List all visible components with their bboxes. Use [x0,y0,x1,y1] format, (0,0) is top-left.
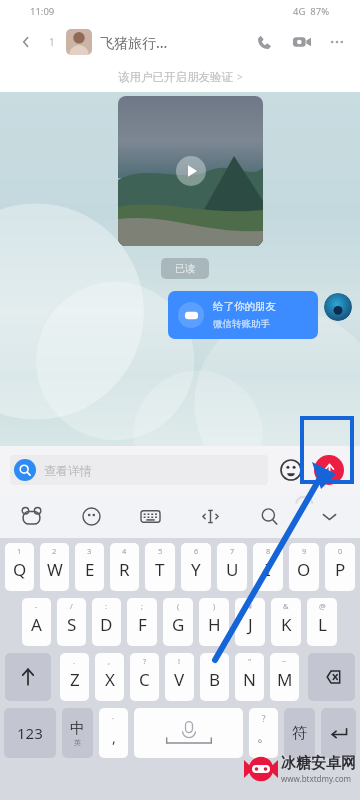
button[interactable]: Space [134,708,243,758]
staticText: C [139,668,150,691]
staticText: 查看详情 [44,463,92,478]
button[interactable]: 符 [284,708,315,758]
staticText: ( [177,601,180,611]
staticText: 2 [52,546,57,556]
button[interactable]: . [60,653,89,701]
button[interactable]: 3 [75,543,104,591]
staticText: 4G 87% [293,5,330,18]
button[interactable]: ? [130,653,159,701]
staticText: V [174,668,185,691]
staticText: & [283,601,289,611]
button[interactable]: " [235,653,264,701]
staticText: : [105,601,108,611]
staticText: 该用户已开启朋友验证 [118,70,233,84]
button[interactable]: More options [326,31,348,53]
staticText: H [208,613,221,636]
button[interactable]: Send [314,455,344,485]
staticText: / [70,601,73,611]
button[interactable]: Baidu input [16,501,46,531]
staticText: ; [141,601,144,611]
staticText: K [281,613,292,636]
button[interactable]: ( [163,598,193,646]
button[interactable]: Voice call [252,30,276,54]
button[interactable]: Emoji [278,457,304,483]
button[interactable]: 已读 [175,262,195,275]
staticText: 微信转账助手 [213,318,270,330]
button[interactable]: 9 [289,543,319,591]
button[interactable]: - [22,598,51,646]
button[interactable]: 给了你的朋友 [168,291,318,339]
staticText: A [31,613,42,636]
staticText: 。 [257,728,271,746]
staticText: U [226,558,239,581]
button[interactable]: 123 [4,708,56,758]
staticText: ? [143,656,147,666]
button[interactable]: 7 [217,543,247,591]
staticText: 中 [70,719,85,738]
staticText: " [248,656,252,666]
button[interactable]: Hide keyboard [314,501,344,531]
button[interactable]: Emoji panel [76,501,106,531]
staticText: 3 [87,546,92,556]
button[interactable]: · [99,708,128,758]
button[interactable]: ; [127,598,157,646]
staticText: B [209,668,221,691]
button[interactable]: Video message [118,96,263,246]
staticText: 8 [266,546,271,556]
button[interactable]: Enter [321,708,356,758]
staticText: X [105,668,115,691]
staticText: R [119,558,130,581]
button[interactable]: ¥ [235,598,265,646]
button[interactable]: ? [249,708,278,758]
staticText: G [172,613,185,636]
staticText: P [335,558,346,581]
staticText: F [138,613,147,636]
button[interactable]: 6 [181,543,211,591]
button[interactable]: Back [16,32,36,52]
button[interactable]: 1 [5,543,34,591]
staticText: S [67,613,77,636]
button[interactable]: My avatar [324,293,352,321]
button[interactable]: 5 [145,543,175,591]
button[interactable]: Video call [290,30,314,54]
staticText: W [47,558,63,581]
button[interactable]: @ [307,598,337,646]
button[interactable]: 0 [325,543,355,591]
button[interactable]: Shift [5,653,51,701]
staticText: 给了你的朋友 [213,300,276,313]
staticText: I [265,558,271,581]
staticText: ~ [282,656,287,666]
staticText: · [112,713,115,724]
button[interactable]: 8 [253,543,283,591]
button[interactable]: 2 [40,543,69,591]
staticText: Q [13,558,27,581]
button[interactable]: ! [165,653,194,701]
button[interactable]: 查看详情 [10,455,268,485]
staticText: ? [262,713,266,724]
button[interactable]: Search [254,501,284,531]
button[interactable]: Unread [44,34,60,50]
button[interactable]: Keyboard layout [135,501,165,531]
staticText: ! [178,656,181,666]
staticText: L [318,613,327,636]
button[interactable]: Contact avatar [66,29,92,55]
button[interactable]: 中 [62,708,93,758]
button[interactable]: Text cursor [195,501,225,531]
staticText: 已读 [175,262,195,275]
button[interactable]: ) [199,598,229,646]
staticText: T [155,558,165,581]
button[interactable]: , [95,653,124,701]
button[interactable]: : [92,598,121,646]
button[interactable]: / [57,598,86,646]
button[interactable]: 4 [110,543,139,591]
button[interactable]: Backspace [308,653,355,701]
staticText: J [248,613,253,636]
staticText: www.btxtdmy.com [281,773,352,784]
staticText: 6 [194,546,199,556]
staticText: 11:09 [30,5,55,18]
staticText: ' [214,656,216,666]
button[interactable]: ' [200,653,229,701]
button[interactable]: ~ [270,653,299,701]
staticText: 符 [292,724,307,743]
button[interactable]: & [271,598,301,646]
